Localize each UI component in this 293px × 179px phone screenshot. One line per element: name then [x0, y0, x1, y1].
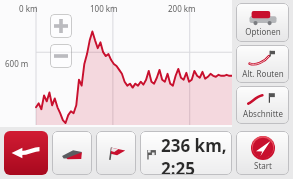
staticText: 200 km	[168, 3, 196, 14]
button[interactable]: Ziel	[96, 131, 136, 175]
staticText: 100 km	[90, 3, 118, 14]
staticText: Optionen	[245, 26, 281, 37]
staticText: 0 km	[19, 3, 38, 14]
button[interactable]: Fahrzeug	[52, 131, 92, 175]
staticText: Alt. Routen	[242, 68, 284, 79]
staticText: 236 km, 2:25	[161, 134, 232, 175]
button[interactable]: 236 km, 2:25	[140, 131, 232, 175]
button[interactable]: Abschnitte	[236, 86, 289, 124]
staticText: Start	[254, 160, 272, 171]
staticText: Abschnitte	[243, 108, 283, 119]
button[interactable]: Vergrößern	[50, 14, 72, 38]
button[interactable]: Alt. Routen	[236, 45, 289, 83]
button[interactable]: Verkleinern	[50, 44, 72, 68]
button[interactable]: Optionen	[236, 3, 289, 42]
staticText: 600 m	[5, 58, 29, 69]
button[interactable]: Zurück	[4, 131, 48, 175]
button[interactable]: Start	[236, 131, 289, 175]
